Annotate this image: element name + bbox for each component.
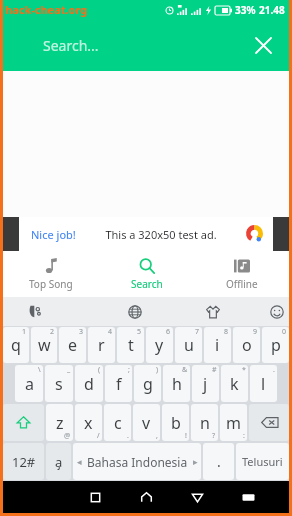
button[interactable]: k (221, 365, 248, 402)
staticText: . (127, 431, 129, 441)
button[interactable]: Back (172, 481, 223, 513)
button[interactable]: s (45, 365, 73, 402)
button[interactable]: Backspace (249, 404, 289, 441)
staticText: w (38, 334, 51, 356)
button[interactable]: w (31, 327, 57, 363)
button[interactable]: o (233, 327, 260, 363)
staticText: s (55, 373, 63, 395)
staticText: u (184, 334, 194, 356)
staticText: q (11, 334, 21, 356)
staticText: 3 (79, 327, 84, 337)
staticText: 12# (12, 453, 36, 471)
button[interactable]: l (250, 365, 277, 402)
staticText: Nice job! (31, 227, 76, 242)
staticText: j (203, 373, 208, 395)
staticText: a̡ (55, 453, 63, 471)
button[interactable]: Telusuri (236, 443, 289, 480)
button[interactable]: Search... (43, 30, 99, 61)
staticText: . (273, 365, 275, 375)
staticText: 4 (108, 327, 113, 337)
button[interactable]: Top Song (3, 251, 99, 297)
button[interactable]: Theme (201, 300, 225, 324)
staticText: 33% (235, 3, 256, 17)
staticText: Offline (226, 277, 258, 291)
button[interactable]: u (175, 327, 202, 363)
staticText: 8 (224, 327, 229, 337)
button[interactable]: x (75, 404, 102, 441)
button[interactable]: h (163, 365, 190, 402)
staticText: c (114, 412, 122, 434)
button[interactable]: Shift (3, 404, 44, 441)
staticText: Search... (43, 36, 99, 55)
button[interactable]: q (3, 327, 29, 363)
staticText: & (182, 365, 188, 375)
staticText: ; (128, 365, 130, 375)
staticText: t (128, 334, 134, 356)
button[interactable]: . (203, 443, 234, 480)
button[interactable]: d (75, 365, 103, 402)
staticText: r (98, 334, 105, 356)
staticText: 0 (282, 327, 287, 337)
staticText: e (68, 334, 78, 356)
staticText: l (261, 373, 266, 395)
button[interactable]: Nice job! (19, 217, 273, 251)
button[interactable]: z (46, 404, 73, 441)
button[interactable]: v (133, 404, 160, 441)
button[interactable]: Handwriting (23, 300, 47, 324)
button[interactable]: g (134, 365, 161, 402)
staticText: @ (64, 431, 71, 441)
staticText: ▸ (193, 457, 198, 467)
button[interactable]: m (220, 404, 247, 441)
button[interactable]: Offline (194, 251, 289, 297)
button[interactable]: j (192, 365, 219, 402)
button[interactable]: p (262, 327, 289, 363)
button[interactable]: Keyboard (223, 481, 274, 513)
button[interactable]: f (105, 365, 132, 402)
staticText: v (142, 412, 151, 434)
staticText: _ (67, 365, 71, 375)
staticText: Search (131, 277, 163, 291)
staticText: , (156, 431, 158, 441)
staticText: n (200, 412, 210, 434)
staticText: Top Song (29, 277, 73, 291)
button[interactable]: b (162, 404, 189, 441)
staticText: 2 (50, 327, 55, 337)
staticText: i (215, 334, 220, 356)
staticText: 5 (137, 327, 142, 337)
staticText: / (97, 431, 100, 441)
button[interactable]: Clear search (247, 29, 279, 61)
button[interactable]: Recent apps (70, 481, 121, 513)
staticText: a (25, 373, 34, 395)
button[interactable]: Search (99, 251, 194, 297)
staticText: f (116, 373, 122, 395)
staticText: ( (98, 365, 101, 375)
button[interactable]: e (59, 327, 86, 363)
staticText: Bahasa Indonesia (87, 454, 188, 470)
button[interactable]: c (104, 404, 131, 441)
staticText: y (155, 334, 164, 356)
staticText: h (172, 373, 182, 395)
staticText: b (171, 412, 181, 434)
button[interactable]: ◂ (73, 443, 201, 480)
button[interactable]: i (204, 327, 231, 363)
button[interactable]: a (15, 365, 43, 402)
button[interactable]: Home (121, 481, 172, 513)
button[interactable]: Symbols (46, 443, 71, 480)
button[interactable]: 12# (3, 443, 44, 480)
button[interactable]: t (117, 327, 144, 363)
staticText: hack-cheat.org (5, 2, 88, 17)
staticText: g (143, 373, 153, 395)
button[interactable]: n (191, 404, 218, 441)
staticText: x (84, 412, 93, 434)
staticText: k (230, 373, 239, 395)
button[interactable]: Emoji (265, 300, 289, 324)
staticText: o (242, 334, 252, 356)
button[interactable]: y (146, 327, 173, 363)
staticText: : (243, 431, 245, 441)
staticText: \ (38, 365, 41, 375)
button[interactable]: Language (123, 300, 147, 324)
staticText: z (56, 412, 64, 434)
button[interactable]: r (88, 327, 115, 363)
staticText: 21.48 (259, 3, 285, 17)
staticText: 1 (22, 327, 27, 337)
